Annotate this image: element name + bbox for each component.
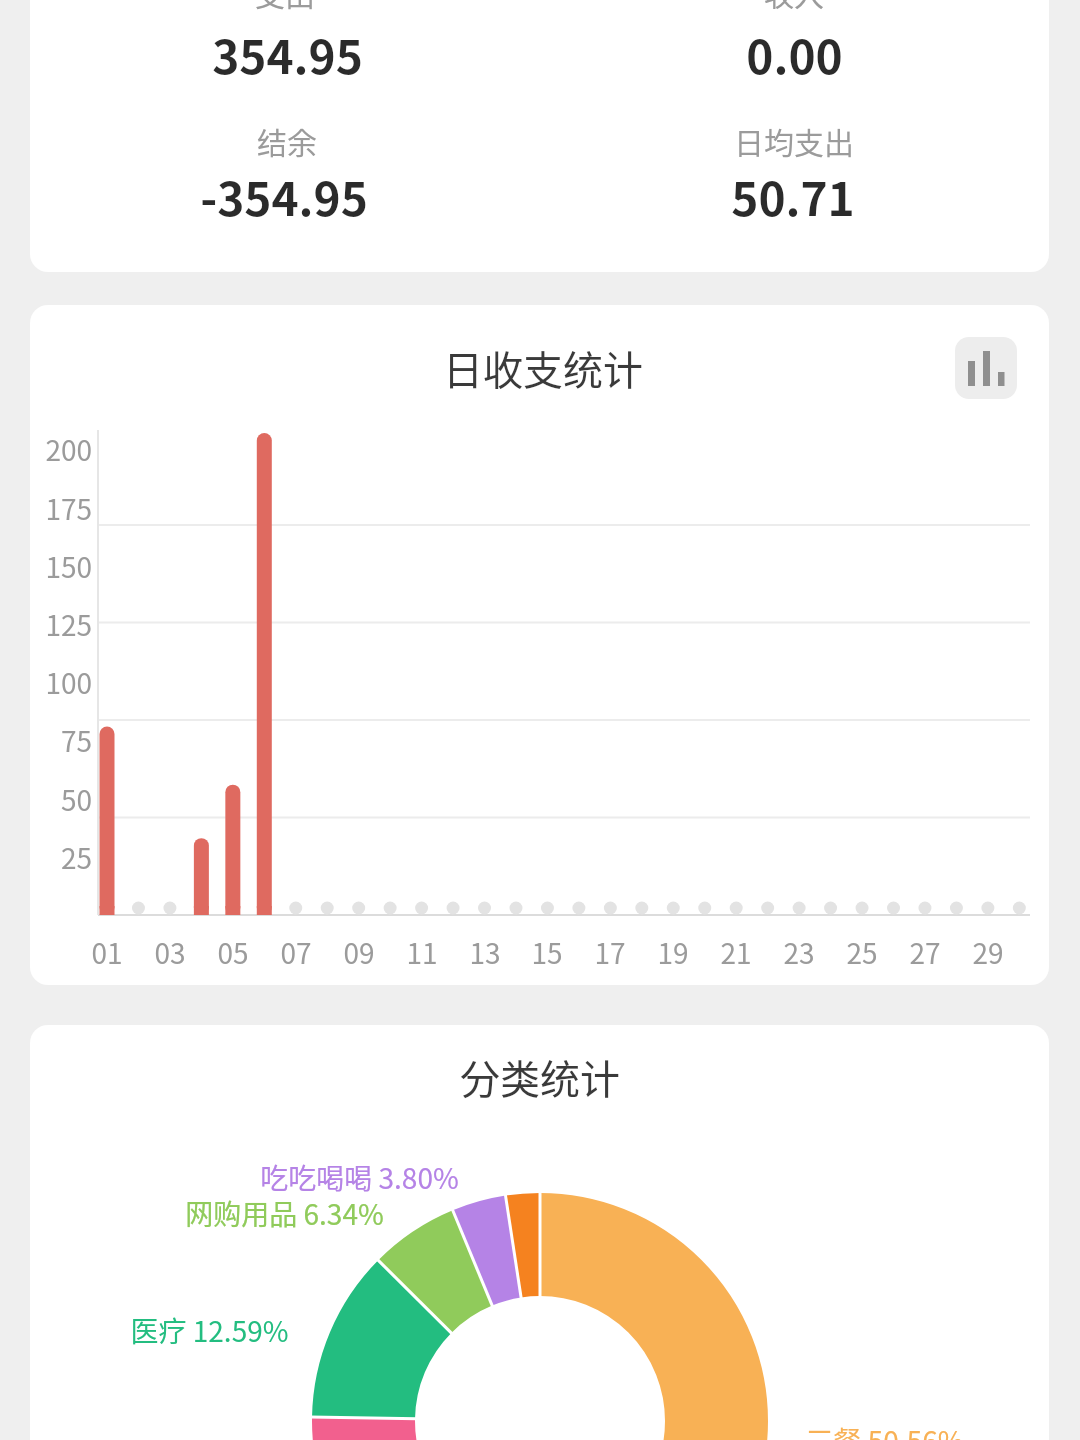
staticText: 网购用品 6.34%	[185, 1193, 384, 1234]
staticText: 75	[60, 720, 92, 761]
staticText: 11	[406, 932, 438, 973]
staticText: 07	[280, 932, 312, 973]
staticText: 50	[60, 779, 92, 820]
staticText: 09	[343, 932, 375, 973]
staticText: 21	[720, 932, 752, 973]
staticText: 100	[45, 662, 92, 703]
staticText: 03	[154, 932, 186, 973]
staticText: 150	[45, 546, 92, 587]
staticText: 日收支统计	[443, 339, 643, 397]
staticText: 05	[217, 932, 249, 973]
staticText: 日均支出	[734, 119, 854, 162]
staticText: 175	[45, 488, 92, 529]
staticText: 19	[657, 932, 689, 973]
staticText: 23	[783, 932, 815, 973]
staticText: 25	[846, 932, 878, 973]
staticText: 分类统计	[460, 1048, 620, 1106]
staticText: 医疗 12.59%	[130, 1310, 289, 1351]
staticText: 29	[972, 932, 1004, 973]
staticText: 13	[469, 932, 501, 973]
staticText: 25	[60, 837, 92, 878]
staticText: 0.00	[746, 21, 843, 88]
staticText: 17	[594, 932, 626, 973]
staticText: 125	[45, 604, 92, 645]
staticText: -354.95	[200, 163, 368, 230]
staticText: 200	[45, 429, 92, 470]
staticText: 27	[909, 932, 941, 973]
staticText: 15	[531, 932, 563, 973]
staticText: 三餐 50.56%	[805, 1420, 964, 1440]
staticText: 吃吃喝喝 3.80%	[260, 1157, 459, 1198]
staticText: 支出	[255, 0, 315, 14]
staticText: 50.71	[731, 163, 855, 230]
staticText: 收入	[764, 0, 824, 14]
staticText: 结余	[257, 119, 317, 162]
staticText: 354.95	[212, 21, 363, 88]
button[interactable]	[955, 337, 1017, 399]
staticText: 01	[91, 932, 123, 973]
